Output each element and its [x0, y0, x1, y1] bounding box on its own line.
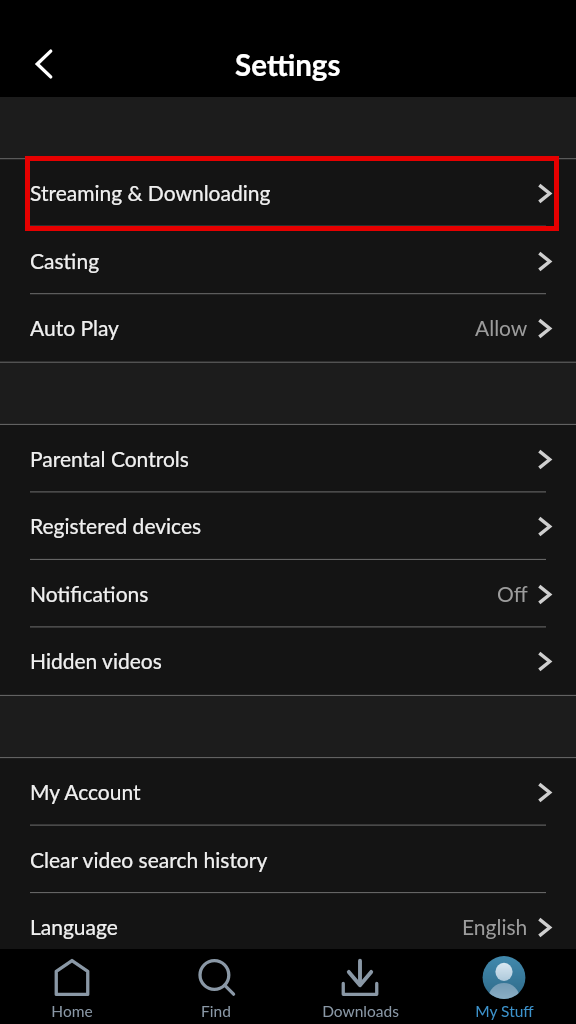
- staticText: My Stuff: [475, 1002, 534, 1021]
- button[interactable]: Downloads: [288, 949, 432, 1024]
- staticText: Off: [497, 581, 528, 606]
- staticText: Clear video search history: [30, 847, 268, 872]
- button[interactable]: Back: [13, 31, 75, 97]
- staticText: Auto Play: [30, 315, 119, 340]
- button[interactable]: Clear video search history: [0, 826, 576, 894]
- staticText: English: [462, 914, 528, 939]
- staticText: Allow: [475, 315, 528, 340]
- staticText: Downloads: [322, 1002, 399, 1021]
- button[interactable]: Parental Controls: [0, 425, 576, 493]
- button[interactable]: Streaming & Downloading: [0, 159, 576, 227]
- staticText: Home: [51, 1002, 93, 1021]
- button[interactable]: Registered devices: [0, 492, 576, 560]
- button[interactable]: My Account: [0, 758, 576, 826]
- staticText: Casting: [30, 248, 100, 273]
- staticText: Settings: [235, 47, 341, 82]
- button[interactable]: Notifications: [0, 560, 576, 628]
- button[interactable]: Home: [0, 949, 144, 1024]
- staticText: Hidden videos: [30, 648, 162, 673]
- button[interactable]: Auto Play: [0, 294, 576, 362]
- staticText: Parental Controls: [30, 446, 189, 471]
- button[interactable]: Hidden videos: [0, 627, 576, 695]
- button[interactable]: My Stuff: [432, 949, 576, 1024]
- staticText: Notifications: [30, 581, 149, 606]
- staticText: Find: [201, 1002, 231, 1021]
- staticText: Language: [30, 914, 118, 939]
- staticText: Streaming & Downloading: [30, 180, 271, 205]
- staticText: My Account: [30, 779, 141, 804]
- button[interactable]: Find: [144, 949, 288, 1024]
- staticText: Registered devices: [30, 513, 202, 538]
- button[interactable]: Casting: [0, 227, 576, 295]
- button[interactable]: Language: [0, 893, 576, 949]
